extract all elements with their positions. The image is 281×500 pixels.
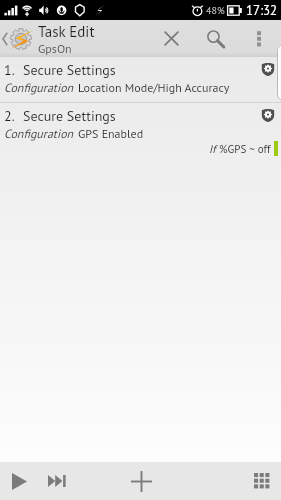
staticText: Location Mode/High Accuracy <box>78 80 230 96</box>
button[interactable]: Search <box>199 20 231 57</box>
button[interactable]: Back <box>0 20 95 57</box>
button[interactable]: 2. <box>0 103 281 159</box>
staticText: Configuration <box>4 80 74 96</box>
button[interactable]: Scroll handle <box>277 44 281 101</box>
staticText: Task Edit <box>38 22 95 41</box>
button[interactable]: Add action <box>125 462 157 500</box>
button[interactable]: Menu grid <box>248 462 276 500</box>
staticText: Secure Settings <box>23 107 116 125</box>
button[interactable]: Play <box>4 462 34 500</box>
other: Back <box>2 32 8 46</box>
staticText: 2. <box>4 107 15 125</box>
staticText: Secure Settings <box>23 61 116 79</box>
staticText: If <box>209 142 216 156</box>
button[interactable]: More options <box>246 20 272 57</box>
staticText: Configuration <box>4 126 74 142</box>
staticText: 17:32 <box>246 2 278 19</box>
button[interactable]: 1. <box>0 57 281 102</box>
button[interactable]: Cancel <box>154 20 189 57</box>
staticText: 1. <box>4 61 15 79</box>
staticText: GpsOn <box>38 41 72 57</box>
staticText: 48% <box>206 4 225 17</box>
staticText: %GPS ~ off <box>219 142 271 156</box>
staticText: GPS Enabled <box>78 126 144 142</box>
button[interactable]: Step <box>40 462 74 500</box>
